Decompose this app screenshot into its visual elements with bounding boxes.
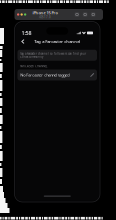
staticText: FARCASTER CHANNEL — [20, 64, 47, 68]
staticText: iOS 17.0 — [39, 15, 51, 19]
staticText: iPhone 15 Pro — [32, 10, 57, 15]
button[interactable]: Window control — [17, 13, 19, 16]
staticText: Tag a Farcaster channel — [34, 39, 80, 44]
staticText: No Farcaster channel tagged — [20, 72, 69, 78]
button[interactable]: Window control — [24, 13, 26, 16]
button[interactable]: Appearance — [83, 12, 87, 17]
button[interactable]: No Farcaster channel tagged — [17, 69, 97, 80]
staticText: 1:58 — [21, 29, 31, 36]
button[interactable]: Rotate device — [75, 12, 79, 17]
button[interactable]: Window control — [20, 13, 23, 16]
button[interactable]: Back — [18, 37, 27, 46]
button[interactable]: More options — [91, 12, 95, 17]
staticText: Tag a Farcaster channel so followers can… — [20, 52, 86, 59]
